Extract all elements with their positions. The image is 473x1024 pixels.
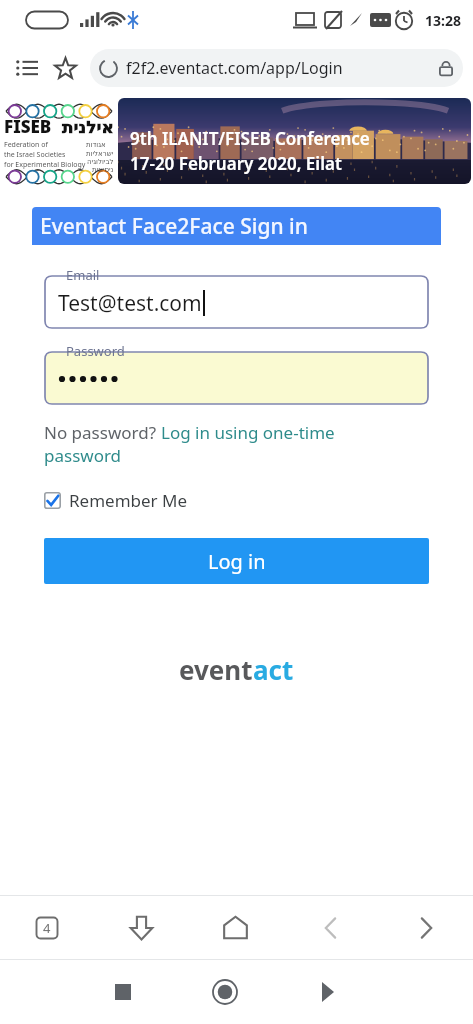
staticText: No password? [44,421,161,444]
button[interactable]: Bookmark [48,51,82,85]
staticText: 4 [43,919,51,937]
staticText: Log in using one-time [161,421,335,444]
button[interactable]: Password [44,343,429,405]
button[interactable]: Back [283,896,378,959]
staticText: password [44,444,122,467]
staticText: 13:28 [425,11,461,30]
staticText: event [179,652,253,687]
button[interactable]: Back [276,960,378,1024]
staticText: 17-20 February 2020, Eilat [130,152,342,175]
button[interactable]: Home [188,896,283,959]
staticText: the Israel Societies [4,150,66,160]
button[interactable]: No password? [44,421,429,467]
button[interactable]: Home [174,960,276,1024]
button[interactable]: Conference banner [118,98,471,184]
staticText: אגודות ישראליות [86,140,114,158]
button[interactable]: Tabs [0,896,94,959]
button[interactable]: Downloads [94,896,188,959]
button[interactable]: f2f2.eventact.com/app/Login [90,49,463,87]
button[interactable]: Reading list [10,51,44,85]
staticText: ניסיונית [92,166,114,174]
button[interactable]: Log in [44,538,429,584]
staticText: Email [66,266,100,284]
button[interactable]: Forward [378,896,473,959]
staticText: Remember Me [69,489,188,512]
staticText: Test@test.com [58,289,202,318]
staticText: לביולוגיה [87,158,114,166]
staticText: אילנית [62,117,114,137]
button[interactable]: Remember Me [44,489,188,512]
staticText: FISEB [4,115,52,138]
staticText: act [253,652,294,687]
button[interactable]: Eventact Face2Face Sign in [32,207,441,245]
staticText: Eventact Face2Face Sign in [40,212,308,241]
button[interactable]: Recents [72,960,174,1024]
button[interactable]: Email [44,267,429,329]
staticText: Federation of [4,140,48,150]
staticText: Password [66,342,125,360]
staticText: Log in [208,548,266,575]
staticText: 9th ILANIT/FISEB Conference [130,127,370,150]
staticText: for Experimental Biology [4,160,86,170]
staticText: f2f2.eventact.com/app/Login [126,57,429,79]
button[interactable]: FISEB [0,96,118,191]
